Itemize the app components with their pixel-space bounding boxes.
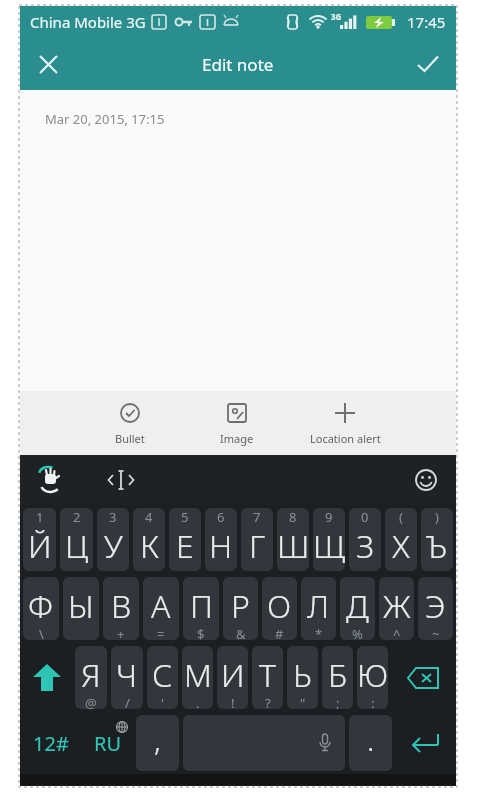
- button[interactable]: %: [340, 577, 375, 640]
- button[interactable]: Image: [182, 402, 292, 446]
- staticText: Х: [392, 524, 410, 568]
- button[interactable]: ': [147, 646, 178, 709]
- staticText: ): [435, 508, 439, 526]
- button[interactable]: [20, 455, 80, 505]
- button[interactable]: /: [111, 646, 143, 709]
- staticText: З: [356, 524, 375, 568]
- staticText: (: [399, 508, 403, 526]
- button[interactable]: [20, 643, 73, 712]
- button[interactable]: 8: [277, 508, 309, 571]
- staticText: Б: [328, 653, 348, 697]
- staticText: 5: [181, 508, 189, 526]
- button[interactable]: 9: [313, 508, 345, 571]
- staticText: 7: [253, 508, 261, 526]
- button[interactable]: .: [349, 715, 392, 771]
- button[interactable]: ): [421, 508, 453, 571]
- staticText: Location alert: [310, 431, 381, 446]
- staticText: 8: [289, 508, 297, 526]
- staticText: RU: [94, 730, 122, 757]
- staticText: Й: [28, 524, 52, 568]
- staticText: П: [190, 584, 213, 628]
- button[interactable]: [96, 455, 146, 505]
- staticText: Edit note: [202, 53, 274, 76]
- button[interactable]: :: [357, 646, 388, 709]
- button[interactable]: *: [301, 577, 336, 640]
- button[interactable]: ,: [136, 715, 179, 771]
- staticText: Э: [425, 584, 446, 628]
- staticText: Ю: [357, 653, 388, 697]
- staticText: Ъ: [426, 524, 448, 568]
- staticText: 12#: [33, 730, 69, 757]
- button[interactable]: (: [385, 508, 417, 571]
- staticText: К: [140, 524, 159, 568]
- button[interactable]: ?: [252, 646, 283, 709]
- staticText: *: [315, 625, 323, 640]
- staticText: ,: [154, 719, 161, 760]
- staticText: ": [300, 694, 306, 709]
- staticText: ^: [393, 625, 401, 640]
- staticText: @: [85, 694, 97, 709]
- staticText: Image: [220, 431, 254, 446]
- button[interactable]: Bullet: [75, 402, 185, 446]
- staticText: Г: [249, 524, 266, 568]
- staticText: Н: [209, 524, 233, 568]
- button[interactable]: !: [217, 646, 248, 709]
- staticText: О: [267, 584, 292, 628]
- button[interactable]: [20, 38, 76, 90]
- button[interactable]: ": [287, 646, 318, 709]
- button[interactable]: 3: [97, 508, 129, 571]
- button[interactable]: @: [75, 646, 107, 709]
- staticText: 3G: [331, 11, 342, 22]
- button[interactable]: #: [262, 577, 297, 640]
- staticText: ~: [432, 625, 440, 640]
- button[interactable]: 12#: [20, 712, 82, 774]
- button[interactable]: 4: [133, 508, 165, 571]
- button[interactable]: [400, 38, 456, 90]
- button[interactable]: .: [182, 646, 213, 709]
- button[interactable]: $: [183, 577, 219, 640]
- staticText: Ь: [293, 653, 312, 697]
- button[interactable]: +: [103, 577, 139, 640]
- button[interactable]: 0: [349, 508, 381, 571]
- staticText: .: [367, 719, 375, 760]
- button[interactable]: ~: [418, 577, 453, 640]
- staticText: Ж: [383, 584, 411, 628]
- staticText: Ш: [277, 524, 309, 568]
- button[interactable]: 5: [169, 508, 201, 571]
- staticText: Ч: [116, 653, 138, 697]
- staticText: Т: [259, 653, 276, 697]
- button[interactable]: ;: [322, 646, 353, 709]
- button[interactable]: \: [23, 577, 59, 640]
- button[interactable]: 7: [241, 508, 273, 571]
- button[interactable]: [183, 715, 345, 771]
- button[interactable]: Location alert: [290, 402, 400, 446]
- staticText: Ф: [28, 584, 54, 628]
- staticText: +: [117, 625, 125, 640]
- staticText: :: [371, 694, 375, 709]
- staticText: Е: [176, 524, 194, 568]
- staticText: \: [39, 625, 44, 640]
- staticText: ;: [336, 694, 340, 709]
- staticText: !: [231, 694, 235, 709]
- staticText: Р: [231, 584, 250, 628]
- button[interactable]: ^: [379, 577, 414, 640]
- button[interactable]: 6: [205, 508, 237, 571]
- button[interactable]: &: [223, 577, 258, 640]
- staticText: Ы: [68, 584, 94, 628]
- staticText: В: [111, 584, 132, 628]
- staticText: 9: [325, 508, 333, 526]
- button[interactable]: 2: [60, 508, 93, 571]
- staticText: 2: [73, 508, 81, 526]
- staticText: China Mobile 3G: [30, 12, 146, 32]
- button[interactable]: [390, 643, 456, 712]
- button[interactable]: =: [143, 577, 179, 640]
- button[interactable]: RU: [82, 712, 134, 774]
- staticText: А: [151, 584, 171, 628]
- button[interactable]: [396, 455, 456, 505]
- button[interactable]: 1: [23, 508, 56, 571]
- button[interactable]: _: [63, 577, 99, 640]
- staticText: Я: [81, 653, 101, 697]
- staticText: 17:45: [407, 12, 446, 32]
- button[interactable]: [394, 712, 456, 774]
